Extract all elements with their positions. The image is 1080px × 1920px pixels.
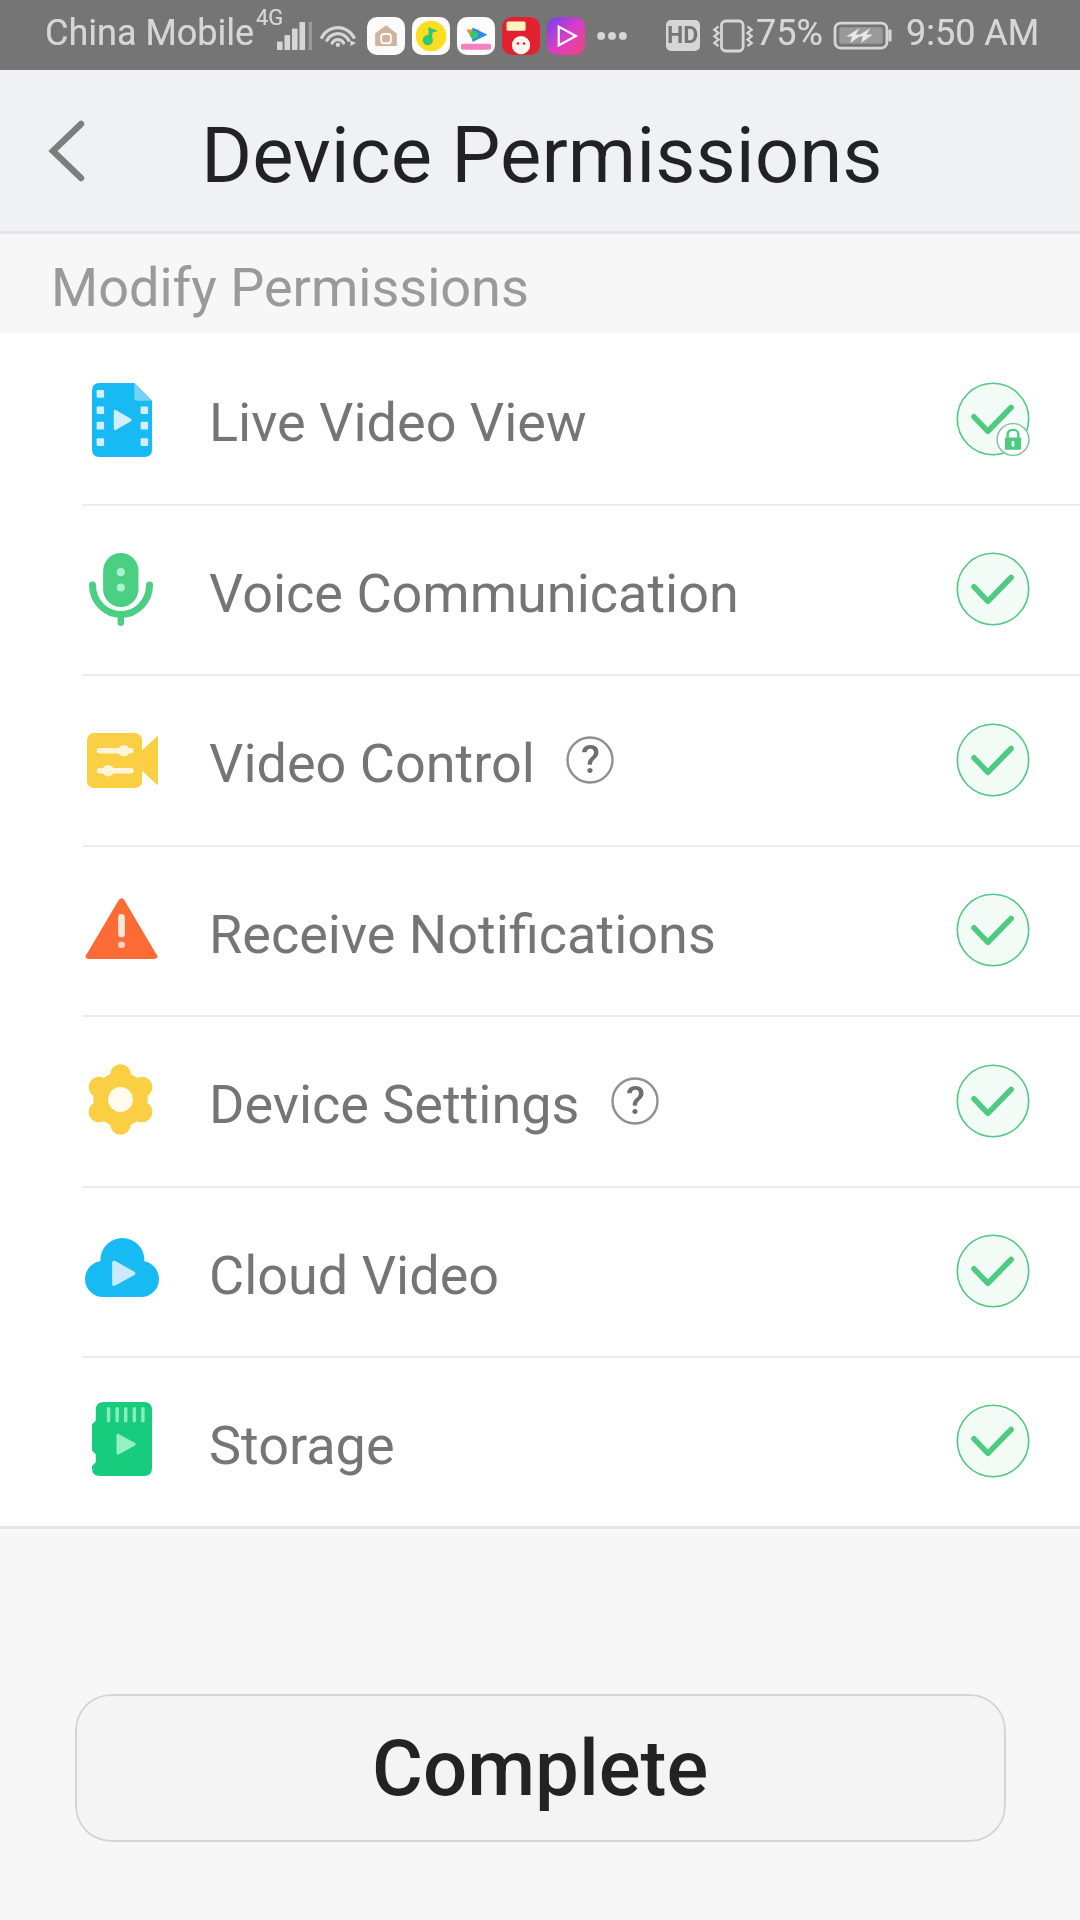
staticText: Voice Communication xyxy=(209,562,739,625)
staticText: 4G xyxy=(256,5,284,31)
staticText: 9:50 AM xyxy=(906,12,1040,54)
button[interactable]: Toggle permission xyxy=(952,548,1034,630)
staticText: ? xyxy=(581,737,600,783)
button[interactable]: Voice Communication xyxy=(0,504,1080,674)
button[interactable]: Device Settings xyxy=(0,1015,1080,1186)
button[interactable]: Help xyxy=(559,729,621,791)
button[interactable]: Help xyxy=(604,1070,666,1132)
button[interactable]: Back xyxy=(0,70,135,231)
staticText: China Mobile xyxy=(45,12,255,54)
button[interactable]: Toggle permission xyxy=(952,889,1034,971)
button[interactable]: Complete xyxy=(75,1694,1006,1842)
button[interactable]: Storage xyxy=(0,1356,1080,1526)
staticText: HD xyxy=(667,22,699,49)
button[interactable]: Toggle permission xyxy=(952,1400,1034,1482)
staticText: Receive Notifications xyxy=(209,903,716,966)
button[interactable]: Live Video View xyxy=(0,333,1080,504)
staticText: ? xyxy=(626,1078,645,1124)
staticText: Storage xyxy=(209,1414,395,1477)
staticText: Device Settings xyxy=(209,1073,580,1136)
button[interactable]: Toggle permission xyxy=(952,719,1034,801)
staticText: Modify Permissions xyxy=(51,256,529,319)
staticText: Live Video View xyxy=(209,391,587,454)
button[interactable]: Toggle permission xyxy=(952,1060,1034,1142)
button[interactable]: Receive Notifications xyxy=(0,845,1080,1015)
button[interactable]: Toggle permission xyxy=(952,1230,1034,1312)
button[interactable]: Video Control xyxy=(0,674,1080,845)
button[interactable]: Cloud Video xyxy=(0,1186,1080,1356)
staticText: Video Control xyxy=(209,732,535,795)
staticText: Device Permissions xyxy=(201,110,883,201)
staticText: Complete xyxy=(372,1723,709,1814)
staticText: 75% xyxy=(756,12,823,54)
staticText: Cloud Video xyxy=(209,1244,500,1307)
button[interactable]: Toggle permission xyxy=(952,378,1034,460)
